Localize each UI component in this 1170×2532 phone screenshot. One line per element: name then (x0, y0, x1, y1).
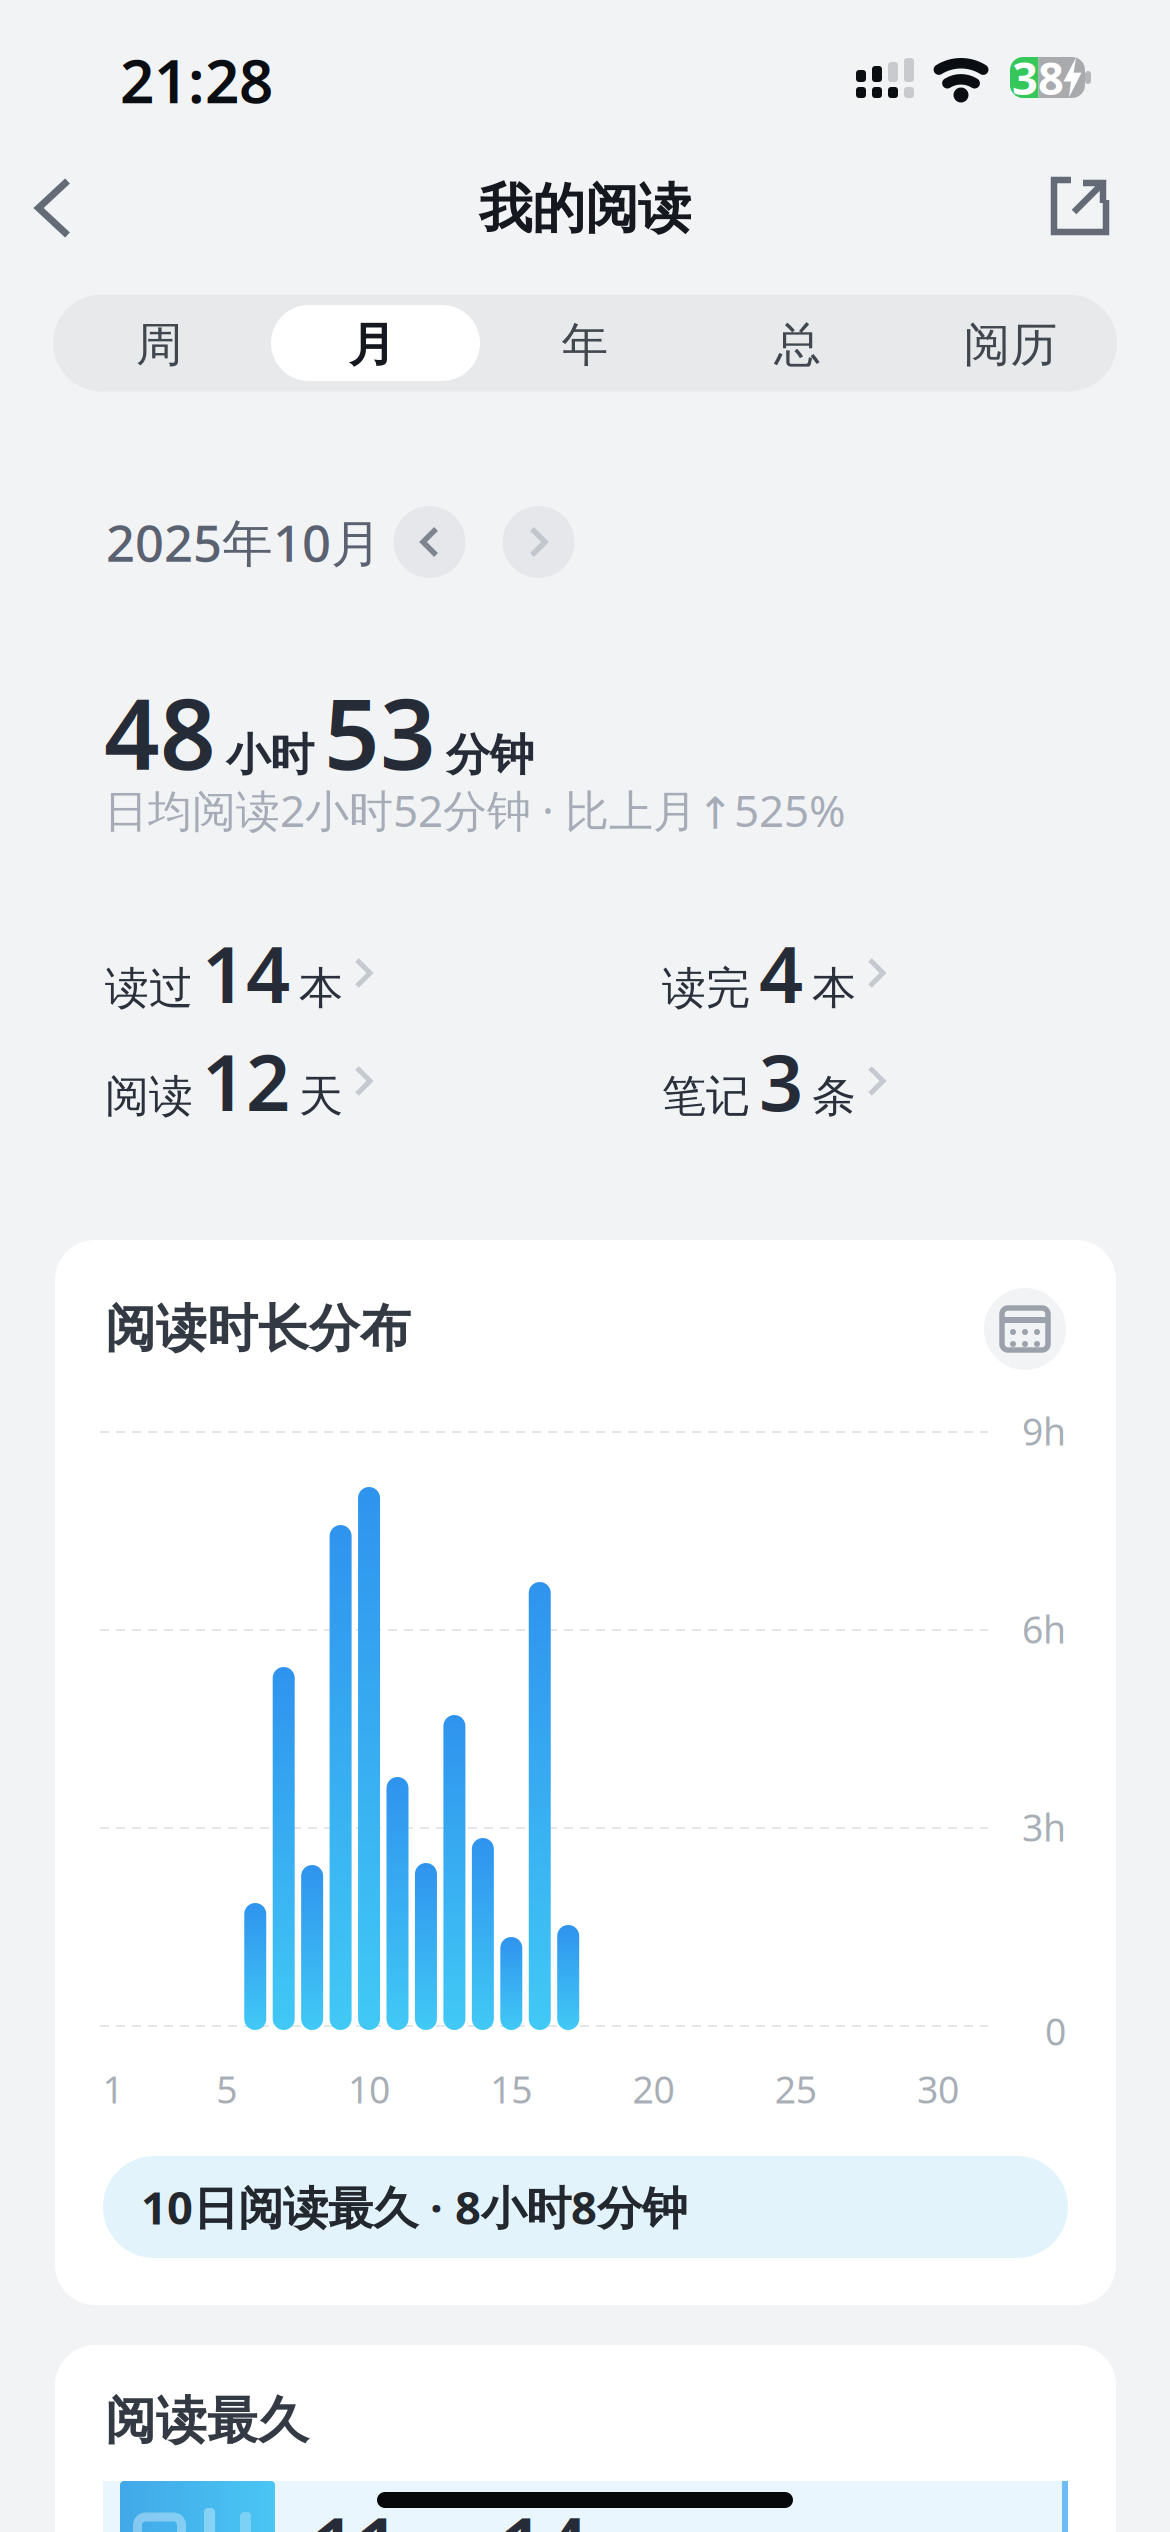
button[interactable]: Share (1042, 168, 1118, 244)
staticText: 12 (202, 1030, 290, 1132)
button[interactable]: Calendar view (984, 1288, 1066, 1370)
staticText: 周 (136, 316, 183, 374)
staticText: 条 (812, 1069, 856, 1123)
staticText: 14 (202, 922, 290, 1024)
staticText: 9h (1022, 1406, 1066, 1456)
staticText: 天 (299, 1069, 343, 1123)
staticText: 11 (312, 2493, 400, 2532)
staticText: 本 (299, 961, 343, 1015)
staticText: 3h (1022, 1802, 1066, 1852)
staticText: 38 (1012, 47, 1064, 108)
button[interactable]: 11 (103, 2481, 1068, 2532)
button[interactable]: 阅历 (905, 296, 1117, 393)
button[interactable]: 月 (266, 296, 478, 393)
staticText: 日均阅读2小时52分钟 · 比上月↑525% (104, 781, 846, 839)
staticText: 21:28 (120, 40, 273, 120)
button[interactable]: Next month (502, 506, 574, 578)
staticText: 53 (324, 667, 436, 797)
staticText: 5 (216, 2064, 237, 2114)
staticText: 读过 (105, 961, 193, 1015)
staticText: 15 (490, 2064, 532, 2114)
staticText: 阅历 (964, 316, 1058, 374)
button[interactable]: Back (24, 167, 81, 249)
staticText: 总 (774, 316, 821, 374)
staticText: 阅读时长分布 (105, 1298, 411, 1360)
button[interactable]: 读过 (105, 922, 370, 1024)
button[interactable]: 周 (53, 296, 265, 393)
staticText: 14 (500, 2493, 588, 2532)
button[interactable]: Previous month (393, 506, 465, 578)
button[interactable]: 总 (692, 296, 904, 393)
staticText: 2025年10月 (106, 508, 382, 576)
button[interactable]: 阅读 (105, 1030, 370, 1132)
staticText: 6h (1022, 1604, 1066, 1654)
staticText: 月 (349, 316, 396, 374)
staticText: 笔记 (662, 1069, 750, 1123)
staticText: 30 (917, 2064, 959, 2114)
staticText: 0 (1045, 2006, 1066, 2056)
button[interactable]: 年 (479, 296, 691, 393)
staticText: 3 (759, 1030, 803, 1132)
staticText: 4 (759, 922, 803, 1024)
staticText: 年 (561, 316, 608, 374)
staticText: 阅读最久 (105, 2390, 309, 2452)
staticText: 我的阅读 (479, 176, 691, 242)
staticText: 小时 (226, 728, 314, 782)
staticText: 分钟 (446, 728, 534, 782)
staticText: 1 (102, 2064, 123, 2114)
staticText: 阅读 (105, 1069, 193, 1123)
staticText: 本 (812, 961, 856, 1015)
button[interactable]: 笔记 (662, 1030, 883, 1132)
staticText: 48 (104, 667, 216, 797)
staticText: 10日阅读最久 · 8小时8分钟 (141, 2177, 687, 2237)
staticText: 10 (348, 2064, 390, 2114)
staticText: 20 (632, 2064, 674, 2114)
staticText: 25 (775, 2064, 817, 2114)
button[interactable]: 读完 (662, 922, 883, 1024)
staticText: 读完 (662, 961, 750, 1015)
